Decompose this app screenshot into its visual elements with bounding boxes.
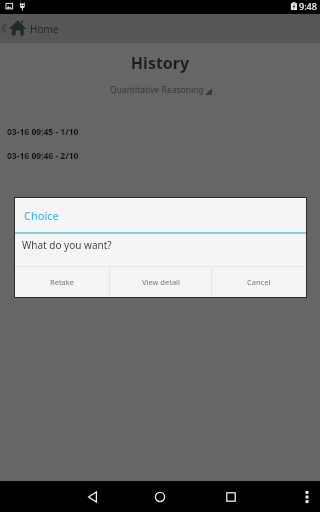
staticText: 9:48: [299, 0, 317, 12]
button[interactable]: Recent apps: [218, 484, 244, 510]
staticText: 03-16 09:45 - 1/10: [7, 126, 79, 136]
button[interactable]: More options: [294, 484, 320, 510]
button[interactable]: 03-16 09:45 - 1/10: [0, 126, 320, 136]
button[interactable]: Back: [80, 484, 106, 510]
button[interactable]: View detail: [110, 267, 211, 297]
staticText: 03-16 09:46 - 2/10: [7, 150, 79, 160]
staticText: View detail: [142, 277, 180, 287]
staticText: Choice: [24, 208, 59, 223]
staticText: Retake: [50, 277, 75, 287]
button[interactable]: Home: [147, 484, 173, 510]
button[interactable]: Cancel: [212, 267, 306, 297]
staticText: History: [0, 52, 320, 74]
staticText: What do you want?: [22, 238, 112, 252]
button[interactable]: Retake: [15, 267, 109, 297]
button[interactable]: Navigate up to Home: [0, 14, 320, 43]
staticText: Quantitative Reasoning: [110, 84, 204, 96]
button[interactable]: 03-16 09:46 - 2/10: [0, 150, 320, 160]
staticText: Home: [30, 22, 59, 36]
staticText: Cancel: [247, 277, 271, 287]
button[interactable]: Quantitative Reasoning: [109, 84, 214, 98]
